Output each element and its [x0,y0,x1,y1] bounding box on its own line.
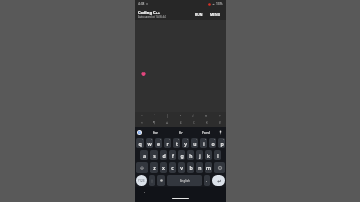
staticText: j [199,152,201,159]
button[interactable]: y [182,138,189,148]
button[interactable]: RUN [193,10,205,18]
button[interactable]: ∆ [161,119,174,127]
button[interactable]: k [205,150,212,160]
button[interactable]: x [160,162,167,173]
other: Emoji [160,179,163,182]
button[interactable]: fir [168,127,193,137]
button[interactable]: ~ [135,112,148,119]
staticText: ` [154,114,155,118]
button[interactable]: Shift [136,162,148,173]
button[interactable]: £ [174,119,187,127]
staticText: ?123 [138,179,145,183]
button[interactable]: Voice input [218,130,223,135]
button[interactable]: | [161,112,174,119]
staticText: e [157,140,160,147]
button[interactable]: € [200,119,213,127]
staticText: o [211,140,215,147]
button[interactable]: English [167,175,202,186]
staticText: 4:38 [138,2,145,6]
button[interactable]: e [155,138,162,148]
button[interactable]: ¥ [213,119,226,127]
staticText: d [162,152,166,159]
staticText: 8 [205,138,207,141]
staticText: × [141,121,143,125]
button[interactable]: u [191,138,198,148]
staticText: r [166,140,169,147]
staticText: MENU [210,12,221,16]
staticText: ~ [141,114,143,118]
other: Shift [140,166,144,170]
button[interactable]: √ [187,112,200,119]
staticText: 5 [178,138,180,141]
button[interactable]: ÷ [213,112,226,119]
button[interactable]: s [150,150,158,160]
button[interactable]: for [142,127,168,137]
button[interactable]: r [164,138,171,148]
staticText: 4 [169,138,171,141]
staticText: w [147,140,152,147]
button[interactable]: q [136,138,144,148]
button[interactable]: Comma [149,175,155,186]
button[interactable]: Enter [212,175,225,186]
button[interactable]: × [135,119,148,127]
button[interactable]: π [200,112,213,119]
staticText: m [206,164,211,171]
button[interactable]: . [204,175,210,186]
button[interactable]: d [160,150,167,160]
staticText: h [189,152,193,159]
staticText: c [171,164,174,171]
button[interactable]: ¢ [187,119,200,127]
staticText: t [176,140,178,147]
staticText: G [138,130,141,135]
staticText: b [189,164,193,171]
staticText: ¶ [153,121,156,125]
button[interactable]: v [178,162,185,173]
staticText: RUN [195,12,203,16]
staticText: English [180,179,190,183]
staticText: 0 [223,138,225,141]
button[interactable]: Backspace [214,162,225,173]
staticText: x [162,164,165,171]
staticText: y [184,140,187,147]
button[interactable]: i [200,138,207,148]
button[interactable]: m [205,162,212,173]
button[interactable]: t [173,138,180,148]
staticText: ÷ [219,114,221,118]
button[interactable]: Ford [193,127,218,137]
staticText: 9 [214,138,216,141]
staticText: ¢ [193,121,195,125]
button[interactable]: o [209,138,216,148]
button[interactable]: w [146,138,153,148]
button[interactable]: f [169,150,176,160]
button[interactable]: a [140,150,148,160]
button[interactable]: n [196,162,203,173]
button[interactable]: z [150,162,158,173]
button[interactable]: c [169,162,176,173]
staticText: g [180,152,184,159]
button[interactable]: • [174,112,187,119]
button[interactable]: Emoji [157,175,165,186]
button[interactable]: l [214,150,221,160]
staticText: Coding C++ [138,10,161,15]
staticText: f [172,152,174,159]
button[interactable]: Google Assistant [137,130,142,135]
staticText: 2 [151,138,153,141]
staticText: 3 [160,138,162,141]
staticText: z [153,164,156,171]
button[interactable]: g [178,150,185,160]
button[interactable]: b [187,162,194,173]
staticText: p [220,140,224,147]
button[interactable]: Symbols [136,175,147,186]
staticText: l [217,152,219,159]
staticText: i [203,140,205,147]
staticText: for [153,130,158,135]
button[interactable]: h [187,150,194,160]
button[interactable]: MENU [208,10,223,18]
staticText: £ [180,121,182,125]
button[interactable]: ¶ [148,119,161,127]
staticText: n [198,164,202,171]
button[interactable]: j [196,150,203,160]
staticText: s [153,152,156,159]
button[interactable]: p [218,138,225,148]
